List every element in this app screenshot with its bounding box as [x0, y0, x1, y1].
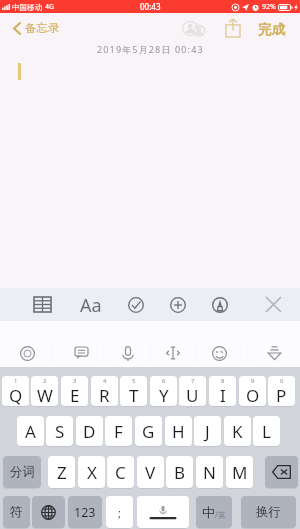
staticText: U [186, 384, 199, 406]
button[interactable]: ; [106, 496, 133, 528]
staticText: O [246, 384, 260, 406]
button[interactable]: F [105, 416, 132, 446]
staticText: J [205, 420, 210, 443]
button[interactable]: 分词 [3, 456, 41, 488]
button[interactable]: Move cursor [157, 339, 189, 367]
button[interactable]: V [137, 456, 164, 488]
staticText: 2019年5月28日 00:43 [97, 43, 204, 55]
staticText: 中 [202, 504, 215, 520]
button[interactable]: 1 [2, 376, 29, 406]
button[interactable]: J [194, 416, 221, 446]
button[interactable]: Input method [11, 339, 43, 367]
staticText: I [220, 384, 226, 406]
button[interactable]: 3 [61, 376, 88, 406]
staticText: 00:43 [140, 1, 161, 12]
button[interactable]: 符 [3, 496, 30, 528]
button[interactable]: 完成 [255, 18, 288, 41]
button[interactable]: K [224, 416, 251, 446]
button[interactable]: 换行 [241, 496, 296, 528]
button[interactable]: S [46, 416, 73, 446]
staticText: 8 [221, 377, 225, 385]
button[interactable]: Text style [76, 288, 106, 321]
button[interactable]: Emoji [203, 339, 235, 367]
staticText: 5 [132, 377, 136, 385]
staticText: G [142, 420, 155, 443]
staticText: T [129, 384, 139, 406]
staticText: E [70, 384, 80, 406]
staticText: N [203, 461, 216, 484]
staticText: B [174, 461, 186, 484]
button[interactable]: Share [223, 17, 242, 37]
button[interactable]: 2 [31, 376, 58, 406]
button[interactable]: Add people [183, 20, 207, 36]
button[interactable]: 0 [268, 376, 295, 406]
staticText: S [55, 420, 65, 443]
staticText: W [37, 384, 53, 406]
staticText: 备忘录 [25, 21, 60, 35]
staticText: F [114, 420, 123, 443]
staticText: Y [159, 384, 169, 406]
button[interactable]: Z [48, 456, 75, 488]
button[interactable]: N [196, 456, 223, 488]
button[interactable]: M [226, 456, 253, 488]
button[interactable]: 中 [196, 496, 232, 528]
button[interactable]: 6 [150, 376, 177, 406]
button[interactable]: Hide keyboard [258, 339, 290, 367]
staticText: 中国移动 [12, 3, 42, 12]
staticText: A [25, 420, 36, 443]
staticText: L [262, 420, 271, 443]
staticText: P [276, 384, 287, 406]
staticText: 分词 [10, 464, 35, 480]
button[interactable]: L [253, 416, 280, 446]
staticText: V [145, 461, 156, 484]
staticText: 9 [251, 377, 255, 385]
button[interactable]: 8 [209, 376, 236, 406]
button[interactable]: Voice input [112, 339, 144, 367]
button[interactable]: Markup [206, 288, 234, 321]
staticText: M [232, 461, 248, 484]
button[interactable]: A [17, 416, 44, 446]
button[interactable]: 4 [91, 376, 118, 406]
button[interactable]: Insert [164, 288, 192, 321]
button[interactable]: 123 [68, 496, 102, 528]
button[interactable] [32, 496, 65, 528]
staticText: H [172, 420, 185, 443]
button[interactable]: G [135, 416, 162, 446]
button[interactable]: Checklist [122, 288, 150, 321]
button[interactable]: Messages [65, 339, 97, 367]
button[interactable]: C [107, 456, 134, 488]
staticText: D [83, 420, 96, 443]
staticText: Q [9, 384, 23, 406]
staticText: 123 [74, 504, 96, 521]
staticText: 3 [73, 377, 77, 385]
button[interactable]: 5 [120, 376, 147, 406]
staticText: 2 [43, 377, 47, 385]
button[interactable]: D [76, 416, 103, 446]
button[interactable]: 9 [239, 376, 266, 406]
staticText: Z [57, 461, 67, 484]
button[interactable] [265, 456, 298, 488]
staticText: R [99, 384, 110, 406]
staticText: 符 [10, 504, 23, 520]
staticText: 0 [280, 377, 284, 385]
button[interactable]: Table [28, 288, 56, 321]
button[interactable] [137, 496, 189, 528]
staticText: K [232, 420, 243, 443]
staticText: 7 [191, 377, 195, 385]
button[interactable]: H [165, 416, 192, 446]
button[interactable]: X [78, 456, 105, 488]
button[interactable]: 7 [179, 376, 206, 406]
staticText: 1 [14, 377, 18, 385]
staticText: Aa [80, 293, 102, 318]
staticText: ; [118, 505, 121, 520]
button[interactable]: 备忘录 [0, 19, 66, 37]
staticText: C [115, 461, 126, 484]
staticText: /英 [215, 509, 226, 520]
staticText: 4 [103, 377, 107, 385]
staticText: 92% [262, 2, 276, 12]
staticText: 4G [45, 2, 55, 12]
button[interactable]: B [166, 456, 193, 488]
staticText: 换行 [256, 504, 281, 520]
button[interactable]: Close [259, 288, 287, 321]
staticText: 完成 [258, 21, 285, 38]
